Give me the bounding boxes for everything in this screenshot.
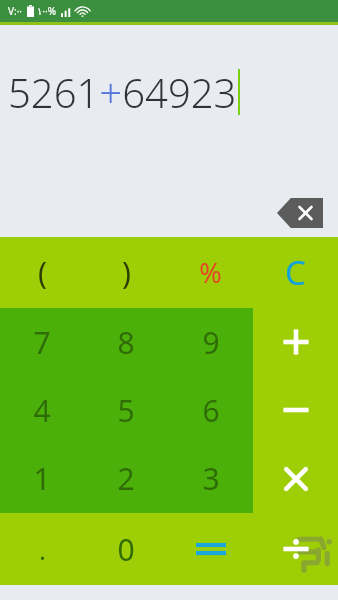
staticText: 4	[33, 390, 51, 431]
staticText: 1	[33, 458, 51, 499]
button[interactable]: )	[84, 237, 168, 308]
button[interactable]: Multiply	[253, 444, 338, 513]
staticText: 5	[117, 390, 135, 431]
button[interactable]: 8	[84, 308, 168, 376]
button[interactable]: .	[0, 513, 84, 585]
button[interactable]: 2	[84, 444, 168, 513]
staticText: 5261+64923	[8, 65, 237, 119]
staticText: V:··	[8, 4, 23, 18]
button[interactable]: Backspace	[277, 198, 323, 228]
staticText: .	[39, 532, 46, 567]
button[interactable]: 6	[168, 376, 253, 444]
staticText: 2	[117, 458, 135, 499]
staticText: ١··%	[37, 4, 57, 18]
staticText: 9	[202, 322, 220, 363]
button[interactable]: Minus	[253, 376, 338, 444]
button[interactable]: C	[253, 237, 338, 308]
button[interactable]: (	[0, 237, 84, 308]
staticText: 8	[117, 322, 135, 363]
button[interactable]: 0	[84, 513, 168, 585]
button[interactable]: 7	[0, 308, 84, 376]
button[interactable]: Plus	[253, 308, 338, 376]
button[interactable]: %	[168, 237, 253, 308]
button[interactable]: 4	[0, 376, 84, 444]
button[interactable]: Divide	[253, 513, 338, 585]
button[interactable]: 9	[168, 308, 253, 376]
button[interactable]: Equals	[168, 513, 253, 585]
staticText: %	[199, 254, 222, 291]
staticText: 0	[117, 529, 135, 570]
staticText: 6	[202, 390, 220, 431]
button[interactable]: 3	[168, 444, 253, 513]
button[interactable]: 5	[84, 376, 168, 444]
staticText: 3	[202, 458, 220, 499]
staticText: )	[122, 252, 131, 293]
button[interactable]: 1	[0, 444, 84, 513]
staticText: 7	[33, 322, 51, 363]
staticText: (	[38, 252, 47, 293]
staticText: C	[285, 250, 306, 295]
